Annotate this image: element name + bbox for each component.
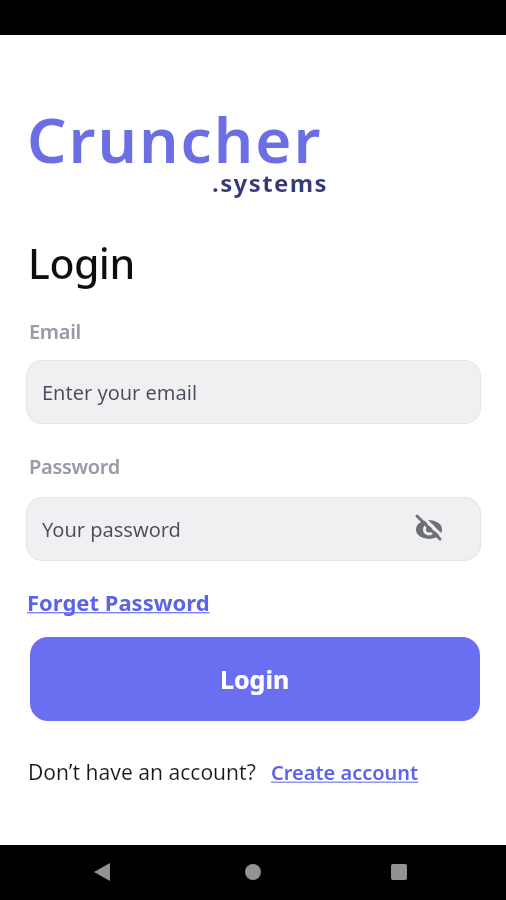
staticText: Password (29, 453, 121, 480)
button[interactable]: Enter your email (26, 360, 481, 424)
staticText: Login (28, 235, 135, 291)
staticText: Don’t have an account? (28, 758, 262, 787)
button[interactable] (237, 856, 269, 888)
button[interactable]: Your password (26, 497, 481, 561)
staticText: Login (220, 662, 290, 696)
staticText: Your password (42, 516, 181, 543)
button[interactable] (413, 513, 445, 545)
staticText: .systems (212, 166, 328, 199)
staticText: Enter your email (42, 379, 198, 406)
staticText: Cruncher (27, 97, 323, 181)
button[interactable]: Forget Password (27, 587, 210, 617)
staticText: Email (29, 318, 81, 345)
button[interactable] (87, 856, 119, 888)
button[interactable]: Create account (271, 759, 419, 786)
button[interactable]: Login (30, 637, 480, 721)
button[interactable] (383, 856, 415, 888)
